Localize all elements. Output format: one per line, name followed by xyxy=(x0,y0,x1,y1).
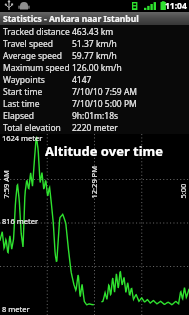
button[interactable]: Average speed xyxy=(0,50,189,62)
button[interactable]: Statistics - Ankara naar Istanbul xyxy=(0,12,189,25)
staticText: 7/10/10 7:59 AM xyxy=(72,86,138,98)
staticText: Travel speed xyxy=(3,38,72,50)
staticText: 51.37 km/h xyxy=(72,38,117,50)
staticText: 9h:01m:18s xyxy=(72,110,119,122)
button[interactable]: Travel speed xyxy=(0,38,189,50)
staticText: Start time xyxy=(3,86,72,98)
button[interactable]: Total elevation xyxy=(0,122,189,134)
button[interactable]: Waypoints xyxy=(0,74,189,86)
staticText: Elapsed xyxy=(3,110,72,122)
staticText: 4147 xyxy=(72,74,92,86)
staticText: 463.43 km xyxy=(72,26,114,38)
button[interactable]: Maximum speed xyxy=(0,62,189,74)
button[interactable]: Start time xyxy=(0,86,189,98)
staticText: 7/10/10 5:00 PM xyxy=(72,98,137,110)
button[interactable]: Last time xyxy=(0,98,189,110)
button[interactable]: Elapsed xyxy=(0,110,189,122)
staticText: Tracked distance xyxy=(3,26,72,38)
staticText: 2220 meter xyxy=(72,122,118,134)
staticText: Average speed xyxy=(3,50,72,62)
staticText: Maximum speed xyxy=(3,62,72,74)
staticText: 11:04 xyxy=(165,0,187,12)
staticText: 126.00 km/h xyxy=(72,62,122,74)
staticText: 59.77 km/h xyxy=(72,50,117,62)
staticText: Waypoints xyxy=(3,74,72,86)
button[interactable]: Altitude over time chart xyxy=(0,134,189,315)
staticText: Statistics - Ankara naar Istanbul xyxy=(3,13,139,25)
staticText: Last time xyxy=(3,98,72,110)
button[interactable]: Tracked distance xyxy=(0,26,189,38)
staticText: Total elevation xyxy=(3,122,72,134)
